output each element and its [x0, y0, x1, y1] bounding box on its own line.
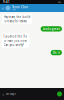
- staticText: to main just now.: [4, 39, 28, 42]
- staticText: online: [12, 9, 16, 11]
- staticText: 9:41: [3, 0, 10, 4]
- button[interactable]: Looks great: [41, 26, 62, 31]
- staticText: +: [2, 91, 4, 97]
- button[interactable]: On it: [51, 50, 62, 55]
- staticText: Looks great: [43, 27, 60, 31]
- staticText: Team Chat: [12, 5, 28, 9]
- staticText: ▮▮▮: [58, 1, 61, 3]
- staticText: Can you verify?: [4, 43, 24, 47]
- staticText: Hey team, the build: [4, 15, 31, 19]
- staticText: I pushed the fix: [4, 35, 27, 38]
- staticText: is ready for review.: [4, 19, 28, 23]
- staticText: Message: [5, 92, 16, 96]
- staticText: ‹: [2, 4, 4, 12]
- staticText: On it: [53, 51, 60, 54]
